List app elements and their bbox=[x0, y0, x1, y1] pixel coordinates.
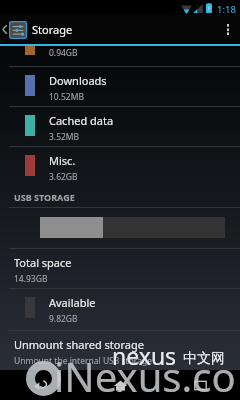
staticText: Available bbox=[49, 295, 96, 310]
staticText: Storage bbox=[32, 22, 73, 37]
button[interactable]: Misc. bbox=[0, 146, 240, 186]
staticText: 10.52MB bbox=[49, 91, 84, 103]
button[interactable]: Total space bbox=[0, 248, 240, 288]
button[interactable]: Unmount shared storage bbox=[0, 330, 240, 370]
staticText: Unmount the internal USB storage bbox=[14, 355, 152, 367]
button[interactable]: 0.94GB bbox=[0, 46, 240, 66]
staticText: 中文网 bbox=[183, 350, 225, 368]
staticText: 0.94GB bbox=[49, 47, 78, 59]
staticText: iNexus.co bbox=[54, 349, 236, 400]
staticText: 3.52MB bbox=[49, 131, 80, 143]
button[interactable]: Cached data bbox=[0, 106, 240, 146]
staticText: 9.82GB bbox=[49, 313, 78, 325]
button[interactable]: Back bbox=[0, 370, 80, 400]
staticText: 14.93GB bbox=[14, 273, 48, 285]
staticText: Misc. bbox=[49, 153, 76, 168]
button[interactable]: Available bbox=[0, 288, 240, 328]
button[interactable]: Home bbox=[80, 370, 160, 400]
button[interactable]: Recent apps bbox=[160, 370, 240, 400]
staticText: USB STORAGE bbox=[14, 191, 75, 203]
staticText: Cached data bbox=[49, 113, 114, 128]
staticText: Total space bbox=[14, 255, 72, 270]
button[interactable]: More options bbox=[216, 15, 240, 44]
staticText: Unmount shared storage bbox=[14, 337, 144, 352]
button[interactable]: Navigate up, Storage bbox=[0, 15, 73, 44]
staticText: nexus bbox=[112, 340, 177, 371]
staticText: 1:18 bbox=[217, 3, 236, 16]
button[interactable]: Downloads bbox=[0, 66, 240, 106]
staticText: Downloads bbox=[49, 73, 107, 88]
staticText: 3.62GB bbox=[49, 171, 78, 183]
